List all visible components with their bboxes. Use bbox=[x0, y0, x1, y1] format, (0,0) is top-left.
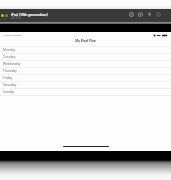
staticText: iOS 16.2 bbox=[11, 16, 21, 20]
staticText: iPad (10th generation) bbox=[11, 12, 48, 16]
button[interactable]: Sunday bbox=[0, 88, 171, 95]
button[interactable]: Friday bbox=[0, 74, 171, 81]
staticText: My Meal Plan bbox=[0, 39, 171, 43]
button[interactable]: Monday bbox=[0, 46, 171, 53]
staticText: Monday bbox=[3, 48, 16, 52]
staticText: 1:23 PM Thu Feb 2 bbox=[3, 34, 22, 37]
button[interactable]: Tuesday bbox=[0, 53, 171, 60]
button[interactable]: Saturday bbox=[0, 81, 171, 88]
button[interactable]: Thursday bbox=[0, 67, 171, 74]
staticText: Saturday bbox=[3, 83, 17, 87]
staticText: Wednesday bbox=[3, 62, 21, 66]
button[interactable]: Wednesday bbox=[0, 60, 171, 67]
button[interactable]: Rotate bbox=[147, 12, 152, 17]
staticText: Friday bbox=[3, 76, 13, 80]
staticText: Thursday bbox=[3, 69, 17, 73]
staticText: Tuesday bbox=[3, 55, 16, 59]
button[interactable]: More options bbox=[156, 12, 161, 17]
button[interactable]: Screenshot bbox=[138, 12, 143, 17]
staticText: Sunday bbox=[3, 90, 15, 94]
button[interactable]: Home bbox=[129, 12, 134, 17]
